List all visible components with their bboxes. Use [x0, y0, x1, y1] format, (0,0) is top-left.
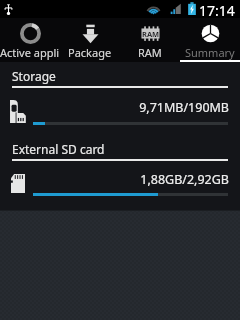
other: USB connected	[2, 3, 15, 16]
button[interactable]: Summary	[180, 18, 240, 62]
button[interactable]: Active appli	[0, 18, 60, 62]
staticText: 1,88GB/2,92GB	[0, 171, 229, 188]
staticText: Package	[68, 45, 112, 60]
button[interactable]: Package	[60, 18, 120, 62]
staticText: 9,71MB/190MB	[0, 99, 229, 116]
staticText: Active appli	[0, 45, 60, 60]
staticText: External SD card	[12, 141, 105, 157]
staticText: Summary	[185, 45, 235, 60]
staticText: RAM	[142, 29, 160, 39]
staticText: 17:14	[199, 1, 235, 19]
staticText: Storage	[12, 68, 56, 84]
button[interactable]: RAM	[120, 18, 180, 62]
staticText: RAM	[138, 45, 162, 60]
